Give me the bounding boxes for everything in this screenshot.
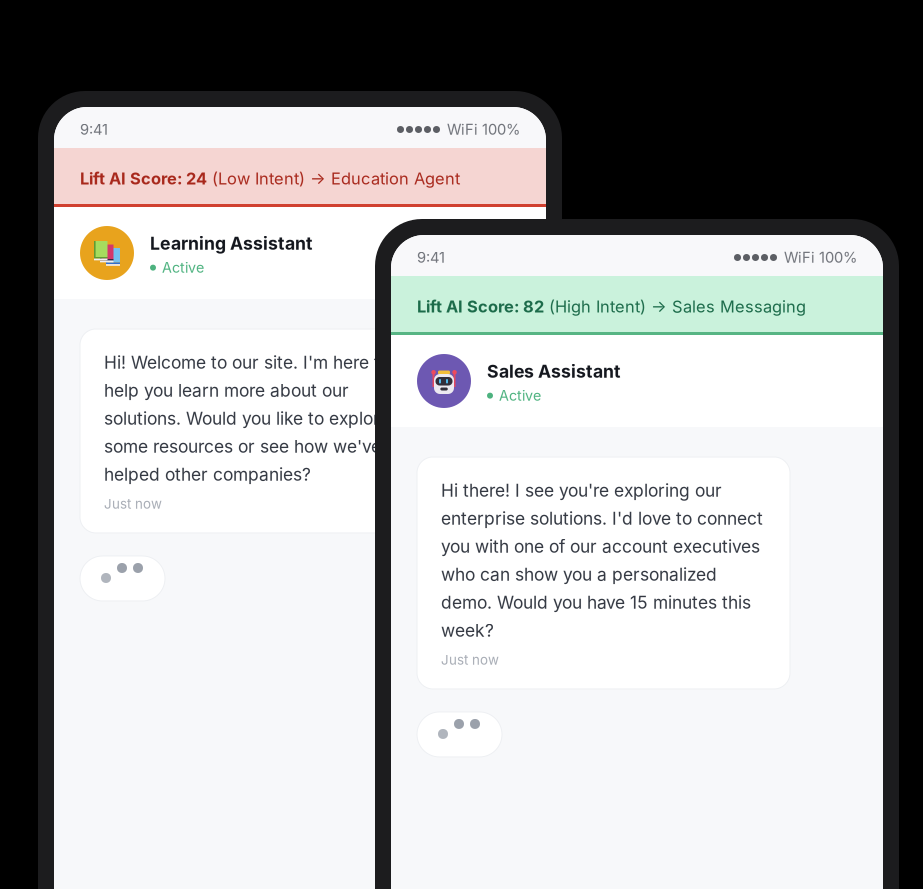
- staticText: Active: [499, 387, 541, 404]
- staticText: 9:41: [80, 121, 108, 138]
- staticText: Active: [162, 259, 204, 276]
- staticText: Learning Assistant: [150, 233, 312, 254]
- button[interactable]: Sales Assistant: [391, 335, 883, 427]
- button[interactable]: Lift AI Score: 24 (Low Intent) → Educati…: [54, 148, 546, 204]
- staticText: WiFi 100%: [784, 249, 857, 266]
- staticText: Hi there! I see you're exploring our ent…: [441, 480, 763, 641]
- staticText: Hi! Welcome to our site. I'm here to hel…: [104, 352, 390, 485]
- staticText: Sales Assistant: [487, 361, 620, 382]
- staticText: Just now: [104, 496, 162, 512]
- staticText: Lift AI Score: 24 (Low Intent) → Educati…: [80, 169, 460, 188]
- staticText: Lift AI Score: 82 (High Intent) → Sales …: [417, 297, 806, 316]
- staticText: WiFi 100%: [447, 121, 520, 138]
- button[interactable]: Hi! Welcome to our site. I'm here to hel…: [80, 329, 453, 533]
- staticText: 9:41: [417, 249, 445, 266]
- staticText: Just now: [441, 652, 499, 668]
- button[interactable]: Lift AI Score: 82 (High Intent) → Sales …: [391, 276, 883, 332]
- button[interactable]: Hi there! I see you're exploring our ent…: [417, 457, 790, 689]
- button[interactable]: Learning Assistant: [54, 207, 546, 299]
